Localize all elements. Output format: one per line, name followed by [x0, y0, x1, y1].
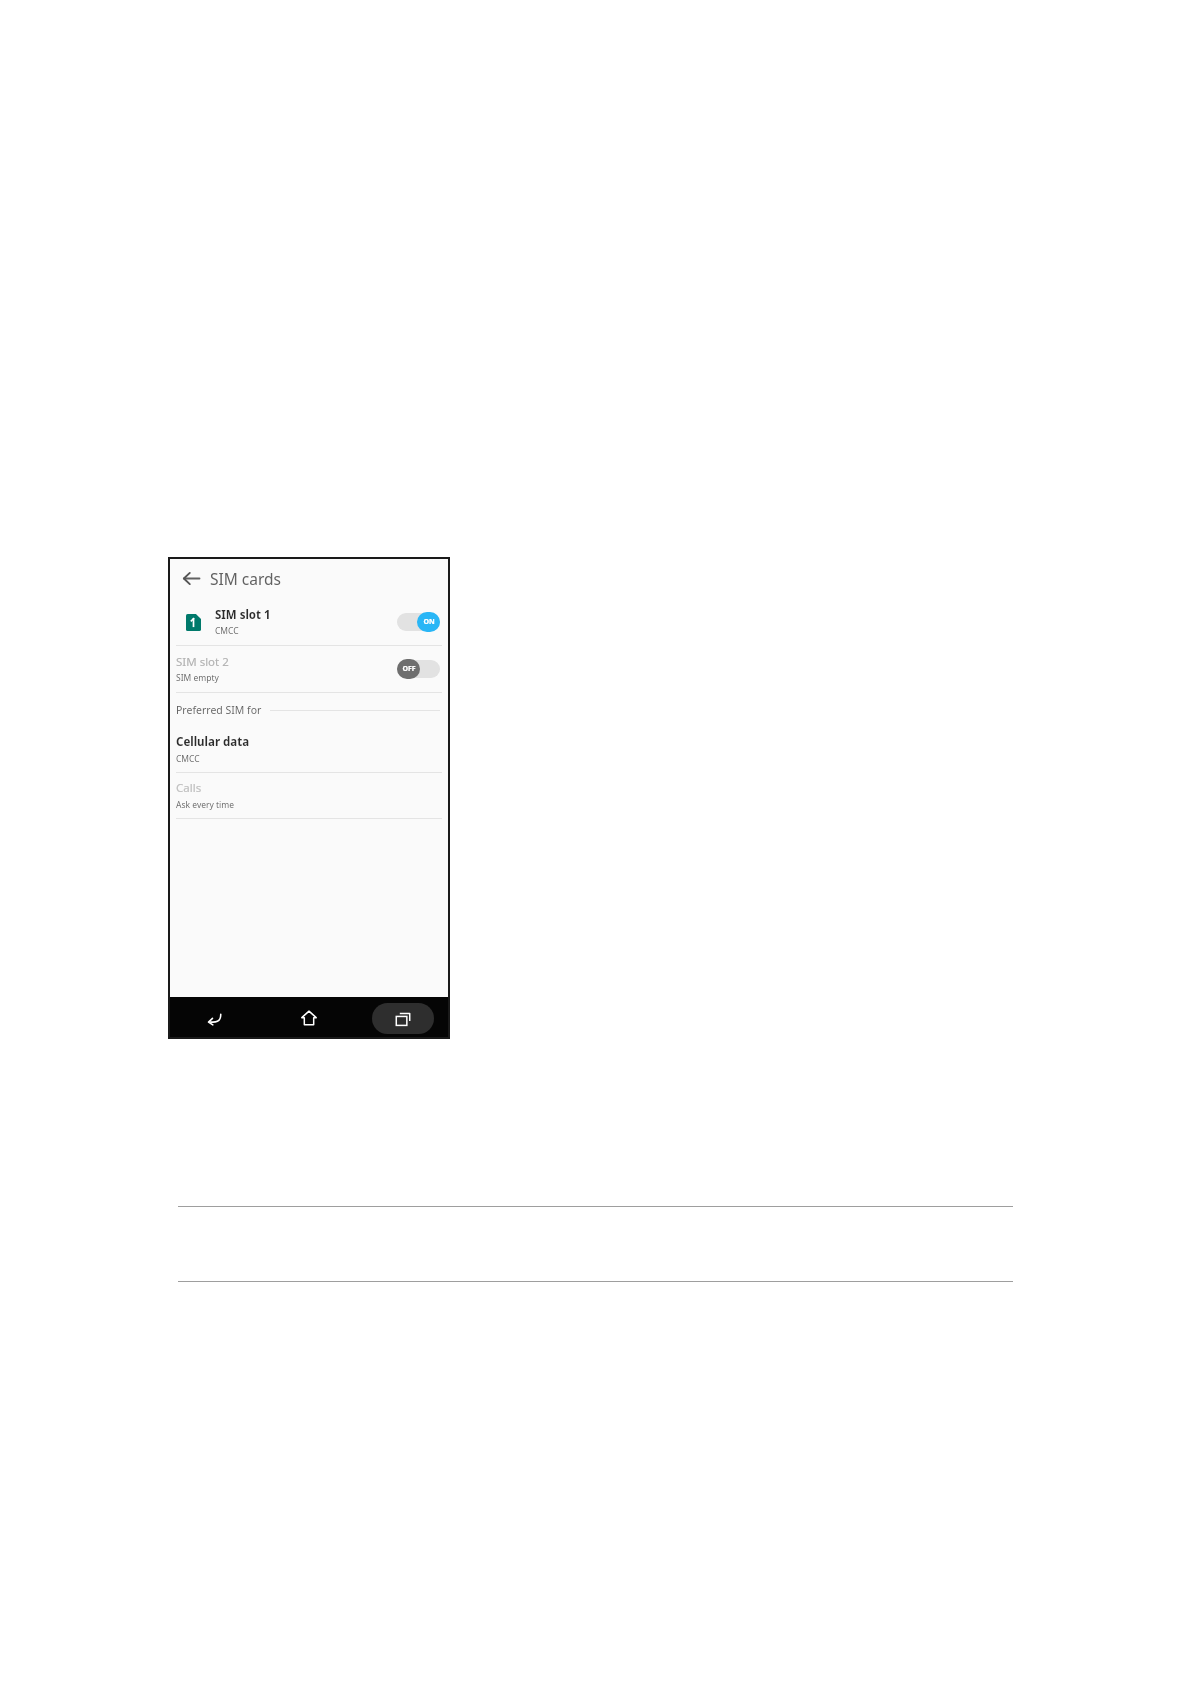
button[interactable]: SIM slot 2	[168, 646, 450, 692]
staticText: Cellular data	[176, 734, 250, 750]
button[interactable]: Back	[178, 565, 204, 591]
staticText: OFF	[402, 664, 416, 674]
button[interactable]: Cellular data	[168, 727, 450, 772]
button[interactable]: Home	[262, 997, 356, 1039]
staticText: Ask every time	[176, 799, 235, 811]
staticText: SIM slot 1	[215, 607, 271, 623]
button[interactable]: SIM slot 1	[168, 599, 450, 645]
button[interactable]: Calls	[168, 773, 450, 818]
staticText: CMCC	[215, 625, 239, 637]
staticText: ON	[423, 617, 435, 627]
button[interactable]: Back	[168, 997, 262, 1039]
button[interactable]: Toggle on	[397, 612, 440, 632]
staticText: Calls	[176, 780, 202, 796]
staticText: SIM cards	[210, 568, 282, 589]
staticText: SIM empty	[176, 672, 219, 684]
staticText: SIM slot 2	[176, 654, 229, 670]
staticText: CMCC	[176, 753, 200, 765]
button[interactable]: Recents	[356, 997, 450, 1039]
button[interactable]: Toggle off	[397, 659, 440, 679]
staticText: Preferred SIM for	[176, 703, 262, 717]
